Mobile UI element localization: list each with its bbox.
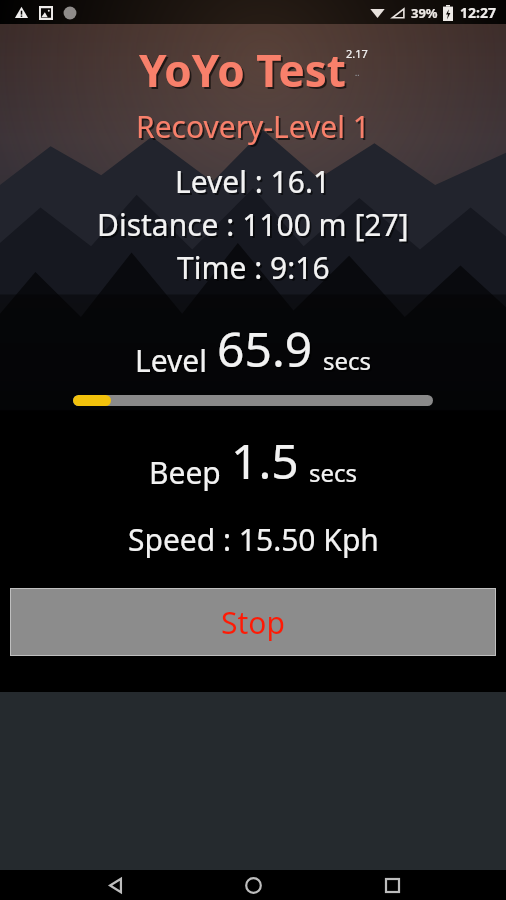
- staticText: Distance : 1100 m [27]: [99, 206, 411, 247]
- staticText: secs: [311, 458, 360, 491]
- staticText: Level: [137, 342, 209, 383]
- staticText: Recovery-Level 1: [138, 108, 372, 149]
- staticText: 1.5: [233, 430, 301, 495]
- button[interactable]: Back: [91, 870, 139, 900]
- staticText: Level : 16.1: [177, 163, 333, 204]
- staticText: Stop: [221, 602, 285, 643]
- staticText: secs: [309, 456, 358, 489]
- staticText: 39%: [411, 4, 438, 22]
- staticText: 12:27: [460, 3, 496, 22]
- staticText: ..: [355, 67, 360, 78]
- staticText: Level: [135, 340, 207, 381]
- staticText: Speed : 15.50 Kph: [128, 519, 379, 560]
- staticText: Distance : 1100 m [27]: [97, 204, 409, 245]
- staticText: Speed : 15.50 Kph: [130, 521, 381, 562]
- staticText: Time : 9:16: [179, 249, 332, 290]
- staticText: secs: [325, 346, 374, 379]
- button[interactable]: Home: [229, 870, 277, 900]
- staticText: Beep: [151, 454, 223, 495]
- staticText: 2.17: [346, 46, 368, 61]
- staticText: YoYo Test: [139, 40, 346, 100]
- staticText: Time : 9:16: [177, 247, 330, 288]
- staticText: YoYo Test: [141, 42, 348, 102]
- button[interactable]: Stop: [10, 588, 496, 656]
- staticText: Recovery-Level 1: [136, 106, 370, 147]
- staticText: 65.9: [217, 316, 313, 381]
- button[interactable]: Recent apps: [368, 870, 416, 900]
- staticText: Beep: [149, 452, 221, 493]
- staticText: 1.5: [231, 428, 299, 493]
- staticText: 65.9: [219, 318, 315, 383]
- staticText: Level : 16.1: [175, 161, 331, 202]
- staticText: secs: [323, 344, 372, 377]
